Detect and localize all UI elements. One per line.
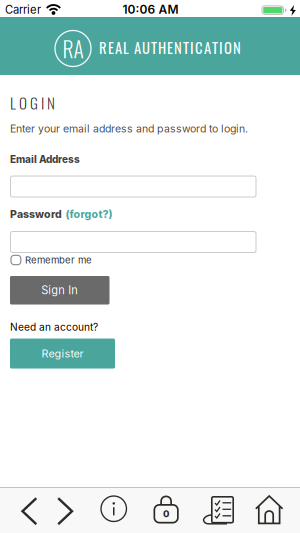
staticText: Need an account? (10, 321, 98, 333)
button[interactable]: Home (255, 495, 283, 524)
staticText: 0 (163, 508, 169, 519)
staticText: Sign In (41, 284, 78, 297)
staticText: Register (41, 347, 83, 360)
staticText: 10:06 AM (122, 2, 178, 17)
staticText: Email Address (10, 153, 80, 165)
button[interactable]: Email Address (10, 175, 256, 197)
button[interactable]: Orders (203, 495, 235, 524)
staticText: Password (10, 208, 62, 220)
button[interactable]: Back (21, 497, 37, 525)
staticText: R E A L A U T H E N T I C A T I O N (99, 37, 241, 58)
button[interactable]: (forgot?) (65, 208, 112, 220)
staticText: L O G I N (10, 91, 55, 114)
button[interactable]: Sign In (10, 276, 109, 304)
button[interactable]: Forward (57, 497, 73, 525)
button[interactable]: Register (10, 338, 115, 368)
staticText: Carrier (5, 3, 41, 16)
button[interactable]: Info (101, 496, 126, 521)
staticText: Remember me (25, 254, 92, 266)
button[interactable]: Password (10, 231, 256, 253)
button[interactable]: Privacy (153, 494, 179, 523)
staticText: Enter your email address and password to… (10, 122, 248, 135)
staticText: (forgot?) (65, 208, 112, 220)
button[interactable]: Remember me (10, 254, 92, 266)
staticText: RA (62, 32, 83, 64)
